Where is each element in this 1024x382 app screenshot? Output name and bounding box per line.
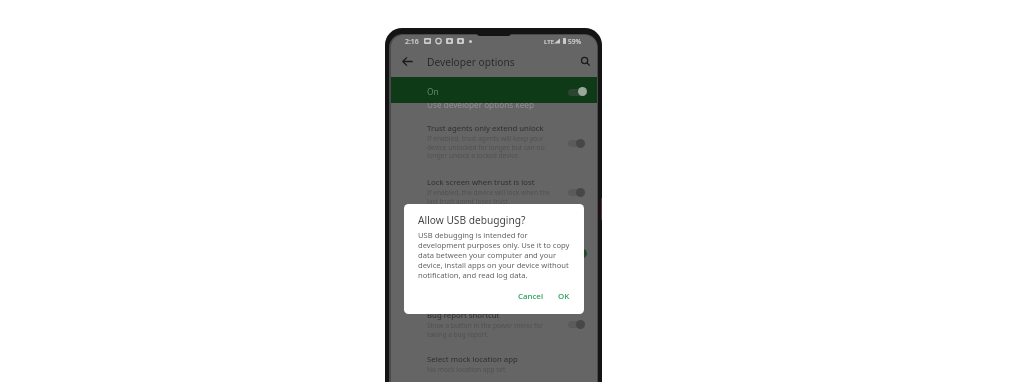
staticText: Select mock location app (427, 354, 518, 365)
staticText: 2:16 (405, 37, 419, 46)
button[interactable]: Lock screen when trust is lost (391, 177, 597, 205)
staticText: Allow USB debugging? (418, 213, 526, 227)
staticText: On (427, 86, 439, 97)
staticText: If enabled, trust agents will keep your … (427, 134, 545, 160)
button[interactable]: Search (575, 51, 596, 72)
staticText: If enabled, the device will lock when th… (427, 188, 550, 206)
button[interactable]: OK (553, 288, 575, 305)
staticText: Trust agents only extend unlock (427, 123, 544, 134)
staticText: No mock location app set (427, 365, 506, 374)
staticText: Show a button in the power menu for taki… (427, 321, 543, 339)
staticText: USB debugging is intended for developmen… (418, 230, 570, 280)
staticText: Lock screen when trust is lost (427, 177, 535, 188)
staticText: Use developer options keep (427, 99, 534, 110)
staticText: Bug report shortcut (427, 310, 500, 321)
staticText: Developer options (427, 55, 515, 69)
button[interactable]: Cancel (513, 288, 549, 305)
staticText: LTE (544, 37, 554, 45)
button[interactable]: On (391, 77, 597, 103)
staticText: 59% (568, 37, 582, 46)
button[interactable]: Trust agents only extend unlock (391, 123, 597, 160)
button[interactable]: Back (397, 51, 418, 72)
staticText: OK (558, 291, 570, 302)
button[interactable]: Select mock location app (391, 354, 597, 374)
staticText: Cancel (518, 291, 544, 302)
button[interactable]: Bug report shortcut (391, 310, 597, 338)
